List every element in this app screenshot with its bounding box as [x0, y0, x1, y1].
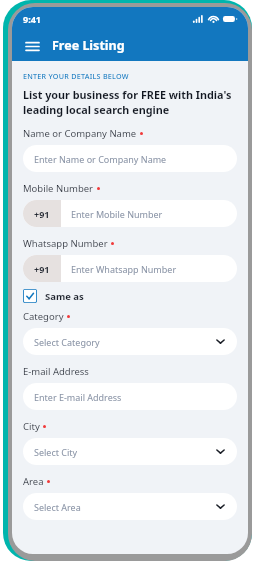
staticText: +91 — [34, 208, 50, 220]
button[interactable]: Same as — [23, 289, 84, 303]
staticText: 9:41 — [23, 13, 41, 25]
staticText: City — [23, 420, 40, 433]
button[interactable]: Select City — [23, 438, 237, 465]
staticText: Free Listing — [52, 37, 125, 54]
staticText: Area — [23, 475, 44, 488]
staticText: Enter E-mail Address — [34, 391, 122, 403]
button[interactable]: Enter Name or Company Name — [23, 145, 237, 172]
staticText: Category — [23, 310, 64, 323]
button[interactable]: Open navigation menu — [23, 37, 41, 55]
staticText: List your business for FREE with India's… — [23, 87, 237, 117]
staticText: Name or Company Name — [23, 127, 137, 140]
staticText: E-mail Address — [23, 365, 89, 378]
button[interactable]: Select Area — [23, 493, 237, 520]
staticText: Enter Mobile Number — [71, 208, 163, 220]
staticText: Enter Whatsapp Number — [71, 263, 177, 275]
staticText: Whatsapp Number — [23, 237, 108, 250]
staticText: +91 — [34, 263, 50, 275]
button[interactable]: +91 — [23, 200, 237, 227]
staticText: Select City — [34, 446, 78, 458]
staticText: Select Category — [34, 336, 100, 348]
staticText: Enter Name or Company Name — [34, 153, 167, 165]
button[interactable]: +91 — [23, 255, 237, 282]
staticText: Mobile Number — [23, 182, 94, 195]
button[interactable]: Select Category — [23, 328, 237, 355]
staticText: Select Area — [34, 501, 81, 513]
staticText: Same as — [45, 290, 84, 303]
staticText: ENTER YOUR DETAILS BELOW — [23, 71, 129, 81]
button[interactable]: Enter E-mail Address — [23, 383, 237, 410]
